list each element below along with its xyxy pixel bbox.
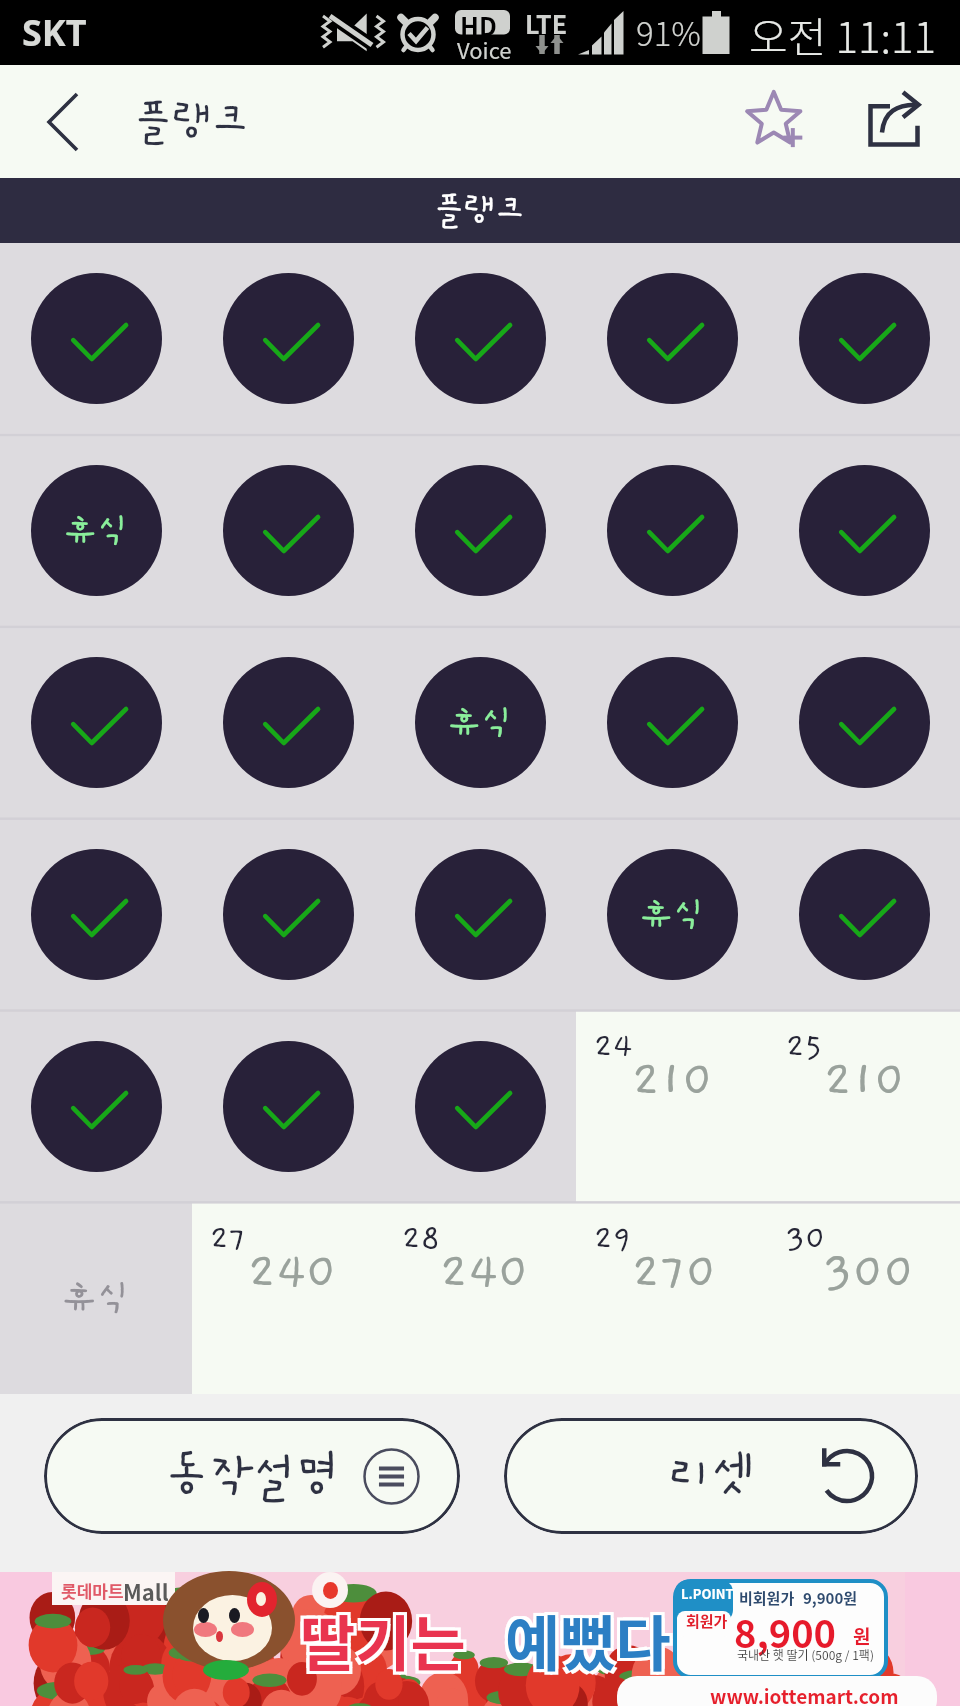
staticText: 오전 11:11 [749, 4, 936, 65]
staticText: 휴식 [448, 703, 514, 743]
button[interactable]: Advertisement [0, 1572, 960, 1706]
staticText: 270 [632, 1245, 717, 1299]
button[interactable] [768, 626, 960, 818]
staticText: 30 [786, 1221, 826, 1257]
staticText: 딸기는 [297, 1599, 463, 1686]
button[interactable] [192, 434, 384, 626]
button[interactable]: 휴식 [576, 818, 768, 1010]
button[interactable] [192, 626, 384, 818]
staticText: 원 [853, 1622, 871, 1650]
staticText: 예뻤다 [508, 1593, 674, 1680]
button[interactable]: 휴식 [384, 626, 576, 818]
staticText: 예뻤다 [508, 1599, 674, 1686]
staticText: 딸기는 [303, 1593, 469, 1680]
staticText: 210 [632, 1053, 714, 1107]
button[interactable] [192, 1010, 384, 1202]
staticText: 딸기는 [303, 1599, 469, 1686]
staticText: 휴식 [640, 895, 706, 935]
staticText: 딸기는 [300, 1596, 466, 1683]
staticText: L.POINT [681, 1584, 734, 1603]
staticText: Voice [457, 33, 512, 65]
staticText: 비회원가 [739, 1587, 795, 1609]
staticText: 300 [824, 1245, 915, 1299]
staticText: LTE [525, 5, 568, 41]
button[interactable] [576, 434, 768, 626]
button[interactable]: 25 [768, 1010, 960, 1202]
button[interactable]: 29 [576, 1202, 768, 1394]
button[interactable] [384, 818, 576, 1010]
button[interactable]: 28 [384, 1202, 576, 1394]
button[interactable]: 휴식 [0, 434, 192, 626]
button[interactable] [384, 243, 576, 434]
staticText: Mall [123, 1575, 169, 1607]
staticText: 210 [824, 1053, 906, 1107]
staticText: 25 [786, 1029, 823, 1065]
staticText: 예뻤다 [502, 1593, 668, 1680]
staticText: 플랭크 [134, 98, 250, 145]
button[interactable]: Share [828, 65, 960, 178]
button[interactable] [0, 818, 192, 1010]
staticText: 리셋 [668, 1450, 755, 1503]
staticText: 휴식 [62, 1277, 131, 1319]
button[interactable] [576, 626, 768, 818]
staticText: 국내산 햇 딸기 (500g / 1팩) [737, 1646, 874, 1663]
staticText: HD [460, 7, 497, 43]
staticText: 롯데마트 [61, 1578, 124, 1603]
staticText: 동작설명 [165, 1450, 339, 1503]
staticText: 29 [594, 1221, 632, 1257]
button[interactable]: 동작설명 [44, 1418, 460, 1534]
staticText: 8,900 [734, 1604, 837, 1659]
button[interactable] [768, 434, 960, 626]
button[interactable]: 27 [192, 1202, 384, 1394]
staticText: 24 [594, 1029, 633, 1065]
staticText: 예뻤다 [502, 1599, 668, 1686]
staticText: 9,900원 [803, 1587, 858, 1609]
staticText: SKT [22, 8, 87, 57]
button[interactable]: 30 [768, 1202, 960, 1394]
button[interactable] [768, 818, 960, 1010]
button[interactable]: 리셋 [504, 1418, 918, 1534]
button[interactable] [0, 243, 192, 434]
staticText: 회원가 [686, 1610, 728, 1632]
staticText: 플랭크 [434, 192, 526, 229]
button[interactable] [576, 243, 768, 434]
button[interactable] [768, 243, 960, 434]
button[interactable] [384, 1010, 576, 1202]
button[interactable]: Back [0, 65, 125, 178]
staticText: 240 [248, 1245, 338, 1299]
staticText: 240 [440, 1245, 530, 1299]
staticText: www.iottemart.com [710, 1682, 899, 1706]
staticText: 휴식 [64, 511, 130, 551]
button[interactable]: Add to favorites [724, 65, 828, 178]
button[interactable]: 휴식 [0, 1202, 192, 1394]
staticText: 딸기는 [297, 1593, 463, 1680]
button[interactable] [192, 818, 384, 1010]
staticText: 91% [636, 8, 701, 56]
button[interactable] [0, 1010, 192, 1202]
staticText: 27 [210, 1221, 246, 1257]
staticText: 예뻤다 [505, 1596, 671, 1683]
staticText: 28 [402, 1221, 441, 1257]
button[interactable] [0, 626, 192, 818]
button[interactable] [384, 434, 576, 626]
button[interactable]: 24 [576, 1010, 768, 1202]
button[interactable] [192, 243, 384, 434]
